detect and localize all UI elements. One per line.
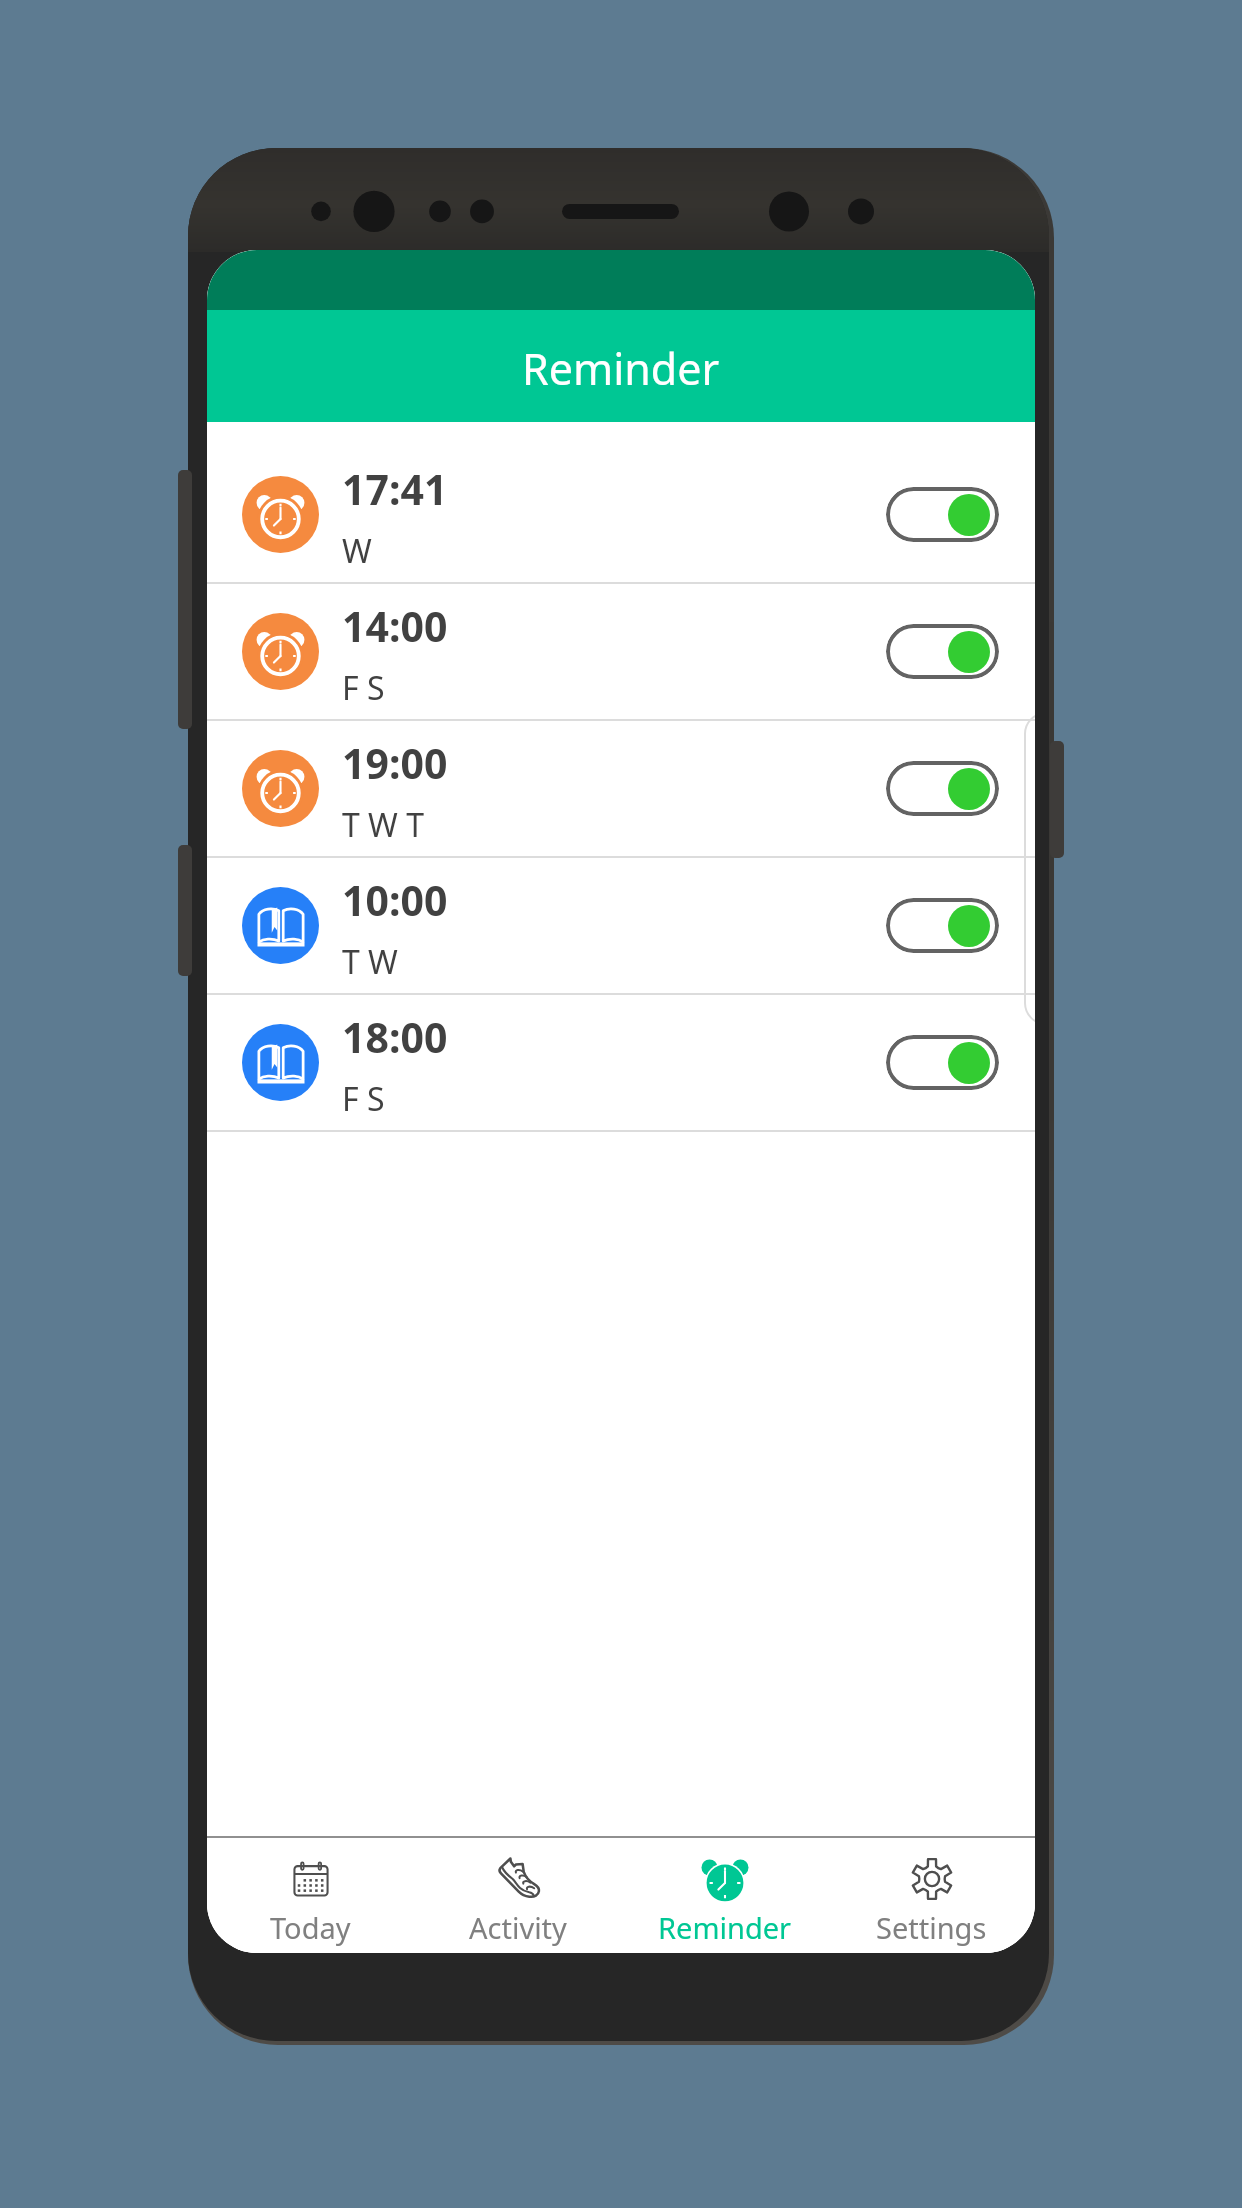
staticText: 17:41	[342, 461, 448, 517]
staticText: Today	[270, 1908, 351, 1947]
button[interactable]: Today	[207, 1838, 414, 1953]
staticText: Settings	[876, 1908, 987, 1947]
button[interactable]: Toggle reminder	[886, 898, 999, 953]
staticText: F S	[342, 666, 385, 710]
staticText: Activity	[469, 1908, 567, 1947]
button[interactable]: Toggle reminder	[886, 761, 999, 816]
staticText: Reminder	[658, 1908, 792, 1947]
staticText: 10:00	[342, 872, 448, 928]
staticText: W	[342, 529, 372, 573]
button[interactable]: 10:00	[207, 858, 1035, 995]
staticText: T W T	[342, 803, 424, 847]
staticText: 14:00	[342, 598, 448, 654]
staticText: 18:00	[342, 1009, 448, 1065]
button[interactable]: 14:00	[207, 584, 1035, 721]
button[interactable]: Activity	[414, 1838, 621, 1953]
button[interactable]: Reminder	[621, 1838, 828, 1953]
staticText: F S	[342, 1077, 385, 1121]
button[interactable]: Toggle reminder	[886, 487, 999, 542]
button[interactable]: 17:41	[207, 447, 1035, 584]
staticText: T W	[342, 940, 398, 984]
button[interactable]: 19:00	[207, 721, 1035, 858]
button[interactable]: 18:00	[207, 995, 1035, 1132]
button[interactable]: Toggle reminder	[886, 624, 999, 679]
button[interactable]: Toggle reminder	[886, 1035, 999, 1090]
button[interactable]: Settings	[828, 1838, 1035, 1953]
staticText: Reminder	[522, 339, 720, 398]
staticText: 19:00	[342, 735, 448, 791]
